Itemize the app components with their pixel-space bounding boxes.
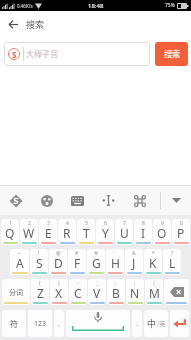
staticText: /英 bbox=[157, 319, 166, 328]
button[interactable]: ~ bbox=[10, 249, 29, 275]
staticText: 8 bbox=[142, 220, 145, 227]
button[interactable]: ) bbox=[50, 279, 68, 305]
staticText: 大棒子音 bbox=[26, 48, 58, 60]
button[interactable]: # bbox=[68, 249, 86, 275]
staticText: # bbox=[75, 250, 79, 257]
button[interactable] bbox=[161, 186, 191, 215]
staticText: E bbox=[45, 225, 52, 241]
staticText: T bbox=[83, 225, 90, 241]
staticText: I bbox=[141, 225, 146, 241]
staticText: 中 bbox=[147, 317, 157, 330]
button[interactable]: ; bbox=[126, 279, 144, 305]
staticText: _ bbox=[96, 280, 99, 287]
button[interactable]: * bbox=[144, 249, 162, 275]
staticText: 4 bbox=[66, 220, 69, 227]
staticText: D bbox=[54, 255, 63, 271]
staticText: Y bbox=[102, 225, 109, 241]
staticText: S bbox=[36, 255, 43, 271]
staticText: 7 bbox=[123, 220, 126, 227]
staticText: L bbox=[169, 255, 176, 271]
button[interactable]: : bbox=[107, 279, 125, 305]
staticText: X bbox=[55, 285, 63, 301]
staticText: 搜索 bbox=[164, 48, 180, 60]
button[interactable]: . bbox=[132, 310, 142, 337]
staticText: 75% bbox=[165, 2, 175, 9]
button[interactable] bbox=[124, 186, 155, 215]
staticText: A bbox=[16, 255, 24, 271]
button[interactable]: , bbox=[54, 310, 64, 337]
button[interactable]: 搜索 bbox=[0, 11, 191, 38]
staticText: J bbox=[132, 255, 136, 271]
staticText: ; bbox=[134, 280, 136, 287]
staticText: 分词 bbox=[9, 287, 23, 297]
button[interactable] bbox=[66, 310, 130, 337]
staticText: N bbox=[130, 285, 140, 301]
button[interactable]: ( bbox=[31, 279, 49, 305]
button[interactable]: 6 bbox=[96, 219, 114, 245]
button[interactable] bbox=[31, 186, 62, 215]
staticText: ~ bbox=[18, 250, 21, 257]
staticText: ' bbox=[114, 250, 116, 257]
button[interactable]: / bbox=[145, 279, 163, 305]
staticText: V bbox=[93, 285, 101, 301]
button[interactable]: 1 bbox=[1, 219, 19, 245]
staticText: , bbox=[58, 319, 60, 329]
staticText: 6 bbox=[104, 220, 107, 227]
staticText: S bbox=[12, 49, 17, 60]
button[interactable] bbox=[170, 310, 189, 337]
button[interactable]: - bbox=[69, 279, 87, 305]
button[interactable]: 4 bbox=[58, 219, 76, 245]
staticText: R bbox=[63, 225, 71, 241]
button[interactable]: ' bbox=[106, 249, 124, 275]
staticText: 18:48 bbox=[88, 2, 104, 10]
button[interactable]: ! bbox=[30, 249, 48, 275]
staticText: 0 bbox=[180, 220, 183, 227]
button[interactable] bbox=[93, 186, 124, 215]
staticText: H bbox=[111, 255, 120, 271]
button[interactable]: % bbox=[87, 249, 105, 275]
staticText: 123 bbox=[34, 319, 47, 329]
button[interactable] bbox=[62, 186, 93, 215]
staticText: K bbox=[149, 255, 157, 271]
button[interactable]: 3 bbox=[39, 219, 57, 245]
staticText: C bbox=[74, 285, 82, 301]
button[interactable]: 123 bbox=[28, 310, 52, 337]
staticText: ? bbox=[171, 250, 174, 257]
button[interactable]: ? bbox=[163, 249, 181, 275]
button[interactable]: 9 bbox=[153, 219, 171, 245]
staticText: 3 bbox=[47, 220, 50, 227]
staticText: 2 bbox=[28, 220, 31, 227]
staticText: 0.46K/s bbox=[17, 3, 33, 9]
staticText: ) bbox=[58, 280, 60, 287]
staticText: O bbox=[157, 225, 167, 241]
button[interactable]: 分词 bbox=[2, 279, 30, 305]
button[interactable]: 2 bbox=[20, 219, 38, 245]
staticText: . bbox=[136, 319, 138, 329]
staticText: 搜索 bbox=[26, 18, 45, 31]
staticText: - bbox=[77, 280, 79, 287]
button[interactable]: 搜索 bbox=[155, 42, 188, 66]
button[interactable]: 8 bbox=[134, 219, 152, 245]
staticText: B bbox=[112, 285, 120, 301]
button[interactable]: & bbox=[125, 249, 143, 275]
button[interactable]: 符 bbox=[2, 310, 26, 337]
staticText: Q bbox=[5, 225, 15, 241]
staticText: / bbox=[153, 280, 155, 287]
staticText: Z bbox=[37, 285, 44, 301]
button[interactable] bbox=[164, 279, 189, 305]
button[interactable]: 0 bbox=[172, 219, 190, 245]
staticText: & bbox=[132, 250, 136, 257]
staticText: P bbox=[177, 225, 185, 241]
staticText: 9 bbox=[161, 220, 164, 227]
button[interactable]: _ bbox=[88, 279, 106, 305]
button[interactable]: 5 bbox=[77, 219, 95, 245]
staticText: G bbox=[92, 255, 101, 271]
staticText: @ bbox=[56, 250, 61, 257]
button[interactable]: @ bbox=[49, 249, 67, 275]
button[interactable]: 中 bbox=[144, 310, 168, 337]
button[interactable] bbox=[0, 186, 31, 215]
button[interactable]: S bbox=[4, 42, 150, 66]
staticText: 1 bbox=[9, 220, 12, 227]
staticText: : bbox=[115, 280, 117, 287]
button[interactable]: 7 bbox=[115, 219, 133, 245]
